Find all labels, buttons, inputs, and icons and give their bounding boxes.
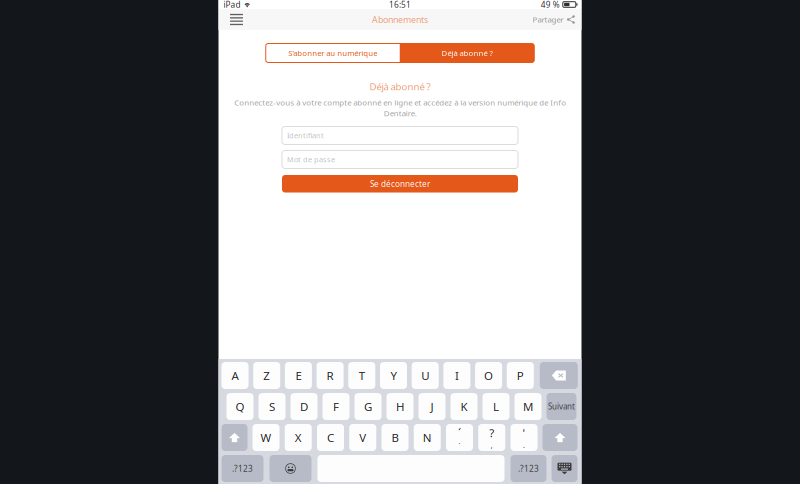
button[interactable]: N: [414, 424, 441, 451]
button[interactable]: P: [507, 362, 534, 389]
staticText: Déjà abonné ?: [441, 48, 492, 58]
button[interactable]: .?123: [510, 455, 546, 482]
button[interactable]: Emoji: [269, 455, 311, 482]
button[interactable]: ': [510, 424, 537, 451]
button[interactable]: ?: [478, 424, 505, 451]
staticText: P: [517, 368, 524, 383]
button[interactable]: Déjà abonné ?: [400, 43, 534, 62]
staticText: R: [327, 368, 334, 383]
button[interactable]: Menu: [225, 9, 247, 30]
button[interactable]: Q: [226, 393, 253, 420]
staticText: 49 %: [541, 0, 560, 10]
button[interactable]: W: [252, 424, 279, 451]
staticText: Q: [235, 399, 244, 414]
button[interactable]: Delete: [540, 362, 578, 389]
button[interactable]: Partager: [532, 9, 575, 30]
staticText: N: [423, 430, 432, 445]
staticText: `: [458, 441, 460, 450]
button[interactable]: G: [354, 393, 381, 420]
button[interactable]: Z: [253, 362, 280, 389]
button[interactable]: I: [443, 362, 470, 389]
staticText: U: [421, 368, 429, 383]
button[interactable]: J: [418, 393, 445, 420]
staticText: ,: [491, 441, 493, 450]
button[interactable]: S: [258, 393, 285, 420]
button[interactable]: Shift: [542, 424, 577, 451]
staticText: A: [231, 368, 238, 383]
staticText: .?123: [518, 463, 539, 474]
staticText: B: [391, 430, 398, 445]
staticText: V: [359, 430, 366, 445]
staticText: D: [300, 399, 308, 414]
staticText: 16:51: [389, 0, 411, 10]
button[interactable]: .?123: [221, 455, 263, 482]
staticText: G: [364, 399, 372, 414]
button[interactable]: Shift: [221, 424, 247, 451]
staticText: Se déconnecter: [370, 178, 430, 189]
button[interactable]: V: [349, 424, 376, 451]
staticText: W: [260, 430, 271, 445]
staticText: M: [523, 399, 533, 414]
button[interactable]: H: [386, 393, 413, 420]
staticText: Identifiant: [287, 130, 324, 140]
staticText: ': [522, 425, 525, 441]
staticText: E: [295, 368, 301, 383]
staticText: O: [484, 368, 493, 383]
button[interactable]: M: [514, 393, 541, 420]
staticText: T: [359, 368, 365, 383]
button[interactable]: Suivant: [546, 393, 576, 420]
button[interactable]: K: [450, 393, 477, 420]
button[interactable]: L: [482, 393, 509, 420]
button[interactable]: ´: [446, 424, 473, 451]
staticText: C: [327, 430, 334, 445]
staticText: J: [430, 399, 433, 414]
button[interactable]: Se déconnecter: [282, 175, 518, 192]
staticText: L: [493, 399, 499, 414]
staticText: K: [460, 399, 467, 414]
button[interactable]: T: [348, 362, 375, 389]
staticText: iPad: [223, 0, 240, 10]
button[interactable]: U: [412, 362, 439, 389]
staticText: Mot de passe: [287, 154, 335, 164]
button[interactable]: A: [221, 362, 248, 389]
staticText: Suivant: [548, 401, 575, 412]
staticText: Partager: [532, 14, 563, 25]
button[interactable]: S'abonner au numérique: [266, 43, 400, 62]
button[interactable]: X: [285, 424, 312, 451]
staticText: S'abonner au numérique: [288, 48, 377, 58]
staticText: Connectez-vous à votre compte abonné en …: [234, 97, 566, 118]
button[interactable]: Hide keyboard: [551, 455, 577, 482]
staticText: ?: [489, 425, 494, 441]
staticText: ´: [458, 425, 461, 441]
staticText: .?123: [232, 463, 253, 474]
staticText: Déjà abonné ?: [369, 80, 430, 93]
staticText: .: [523, 441, 525, 450]
button[interactable]: E: [285, 362, 312, 389]
staticText: Y: [390, 368, 396, 383]
staticText: I: [455, 368, 459, 383]
staticText: S: [269, 399, 275, 414]
button[interactable]: Y: [380, 362, 407, 389]
staticText: F: [333, 399, 339, 414]
staticText: Z: [263, 368, 270, 383]
button[interactable]: D: [290, 393, 317, 420]
button[interactable]: B: [381, 424, 408, 451]
staticText: X: [295, 430, 302, 445]
button[interactable]: F: [322, 393, 349, 420]
button[interactable]: R: [317, 362, 344, 389]
button[interactable]: C: [317, 424, 344, 451]
staticText: Abonnements: [372, 13, 428, 25]
staticText: H: [396, 399, 404, 414]
button[interactable]: O: [475, 362, 502, 389]
